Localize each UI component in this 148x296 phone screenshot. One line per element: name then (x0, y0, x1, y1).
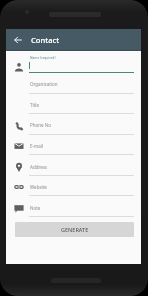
button[interactable] (9, 138, 138, 157)
staticText: Website (30, 184, 47, 190)
staticText: Name (required) (30, 55, 56, 59)
button[interactable] (9, 118, 138, 137)
button[interactable] (9, 77, 138, 96)
button[interactable] (9, 200, 138, 219)
staticText: Note (30, 205, 41, 211)
button[interactable] (9, 97, 138, 116)
button[interactable] (9, 179, 138, 198)
staticText: GENERATE (61, 226, 89, 233)
staticText: Contact (31, 35, 60, 45)
button[interactable] (9, 159, 138, 178)
staticText: Address (30, 164, 48, 170)
staticText: Phone No (30, 122, 51, 128)
button[interactable]: GENERATE (15, 222, 134, 237)
staticText: E-mail (30, 143, 44, 149)
staticText: Organization (30, 81, 58, 87)
staticText: Title (30, 102, 39, 108)
button[interactable] (9, 56, 138, 75)
button[interactable]: Back (12, 34, 24, 46)
